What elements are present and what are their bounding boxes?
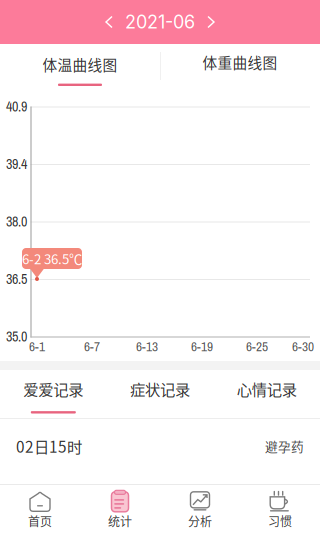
staticText: 02日15时 — [16, 435, 82, 457]
staticText: 6-7 — [84, 337, 100, 355]
staticText: 分析 — [188, 512, 212, 530]
button[interactable]: 分析 — [160, 482, 240, 533]
staticText: 35.0 — [6, 327, 27, 346]
staticText: 6-19 — [191, 337, 213, 355]
button[interactable]: Previous month — [99, 9, 119, 34]
button[interactable]: 体重曲线图 — [160, 44, 320, 88]
button[interactable]: 统计 — [80, 482, 160, 533]
staticText: 40.9 — [6, 97, 27, 116]
staticText: 习惯 — [268, 512, 292, 530]
staticText: 36.5 — [6, 270, 27, 288]
staticText: 6-1 — [29, 337, 45, 355]
staticText: 爱爱记录 — [23, 378, 83, 400]
button[interactable]: 体温曲线图 — [0, 44, 160, 88]
staticText: 38.0 — [6, 212, 27, 231]
staticText: 统计 — [108, 512, 132, 530]
staticText: 体温曲线图 — [42, 54, 117, 75]
button[interactable]: 爱爱记录 — [0, 370, 107, 418]
staticText: 心情记录 — [237, 378, 297, 400]
button[interactable]: 首页 — [0, 482, 80, 533]
staticText: 避孕药 — [265, 437, 304, 455]
staticText: 2021-06 — [125, 11, 195, 33]
button[interactable]: Next month — [201, 9, 221, 34]
staticText: 6-13 — [136, 337, 158, 355]
button[interactable]: 症状记录 — [107, 370, 213, 418]
staticText: 6-25 — [246, 337, 268, 355]
staticText: 首页 — [28, 512, 52, 530]
button[interactable]: 心情记录 — [213, 370, 320, 418]
staticText: 6-2 36.5℃ — [22, 249, 82, 268]
staticText: 6-30 — [292, 337, 314, 355]
staticText: 症状记录 — [130, 378, 190, 400]
button[interactable]: 习惯 — [240, 482, 320, 533]
staticText: 体重曲线图 — [202, 51, 277, 73]
staticText: 39.4 — [6, 155, 27, 173]
